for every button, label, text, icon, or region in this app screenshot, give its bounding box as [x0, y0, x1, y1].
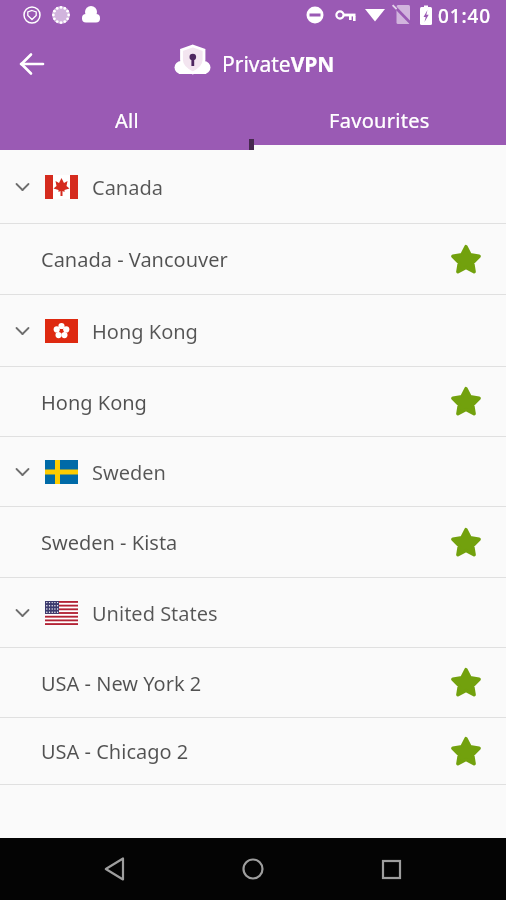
staticText: USA - Chicago 2 — [41, 738, 447, 765]
button[interactable]: Favourites — [253, 96, 506, 145]
button[interactable] — [447, 664, 485, 702]
button[interactable]: Canada — [0, 150, 506, 224]
staticText: Canada — [92, 174, 163, 201]
button[interactable]: Hong Kong — [0, 295, 506, 367]
staticText: Canada - Vancouver — [41, 246, 447, 273]
staticText: Favourites — [329, 107, 430, 134]
staticText: 01:40 — [438, 3, 492, 29]
button[interactable]: Sweden - Kista — [0, 507, 506, 578]
staticText: Sweden — [92, 459, 166, 486]
button[interactable] — [322, 838, 460, 900]
staticText: Hong Kong — [41, 389, 447, 416]
button[interactable]: USA - Chicago 2 — [0, 718, 506, 785]
button[interactable]: United States — [0, 578, 506, 648]
staticText: Hong Kong — [92, 318, 198, 345]
button[interactable] — [447, 733, 485, 771]
button[interactable]: Canada - Vancouver — [0, 224, 506, 295]
button[interactable]: Hong Kong — [0, 367, 506, 437]
button[interactable] — [447, 524, 485, 562]
staticText: United States — [92, 600, 218, 627]
button[interactable] — [447, 383, 485, 421]
button[interactable] — [10, 42, 54, 86]
button[interactable]: USA - New York 2 — [0, 648, 506, 718]
staticText: PrivateVPN — [222, 50, 335, 79]
button[interactable] — [184, 838, 322, 900]
button[interactable]: Sweden — [0, 437, 506, 507]
button[interactable]: All — [0, 96, 253, 145]
button[interactable] — [447, 241, 485, 279]
staticText: USA - New York 2 — [41, 670, 447, 697]
staticText: All — [115, 107, 139, 134]
staticText: Sweden - Kista — [41, 529, 447, 556]
button[interactable] — [46, 838, 184, 900]
